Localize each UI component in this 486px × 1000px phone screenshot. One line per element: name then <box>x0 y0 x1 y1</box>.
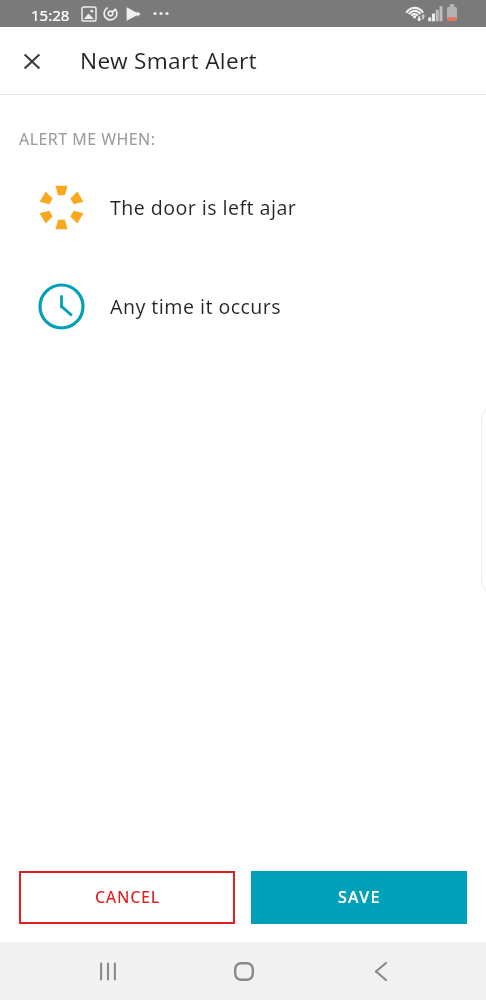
staticText: 15:28 <box>31 5 70 25</box>
button[interactable]: The door is left ajar <box>0 183 486 231</box>
button[interactable]: CANCEL <box>19 871 235 924</box>
staticText: New Smart Alert <box>80 45 257 76</box>
staticText: Any time it occurs <box>110 293 282 320</box>
button[interactable]: Recent apps <box>79 944 136 998</box>
button[interactable]: Home <box>215 944 272 998</box>
button[interactable]: Any time it occurs <box>0 282 486 330</box>
staticText: The door is left ajar <box>110 194 297 221</box>
button[interactable]: SAVE <box>251 871 467 924</box>
staticText: CANCEL <box>95 886 160 908</box>
staticText: ALERT ME WHEN: <box>19 128 156 150</box>
button[interactable]: Close <box>0 27 64 95</box>
button[interactable]: Back <box>352 944 409 998</box>
staticText: SAVE <box>338 886 381 908</box>
